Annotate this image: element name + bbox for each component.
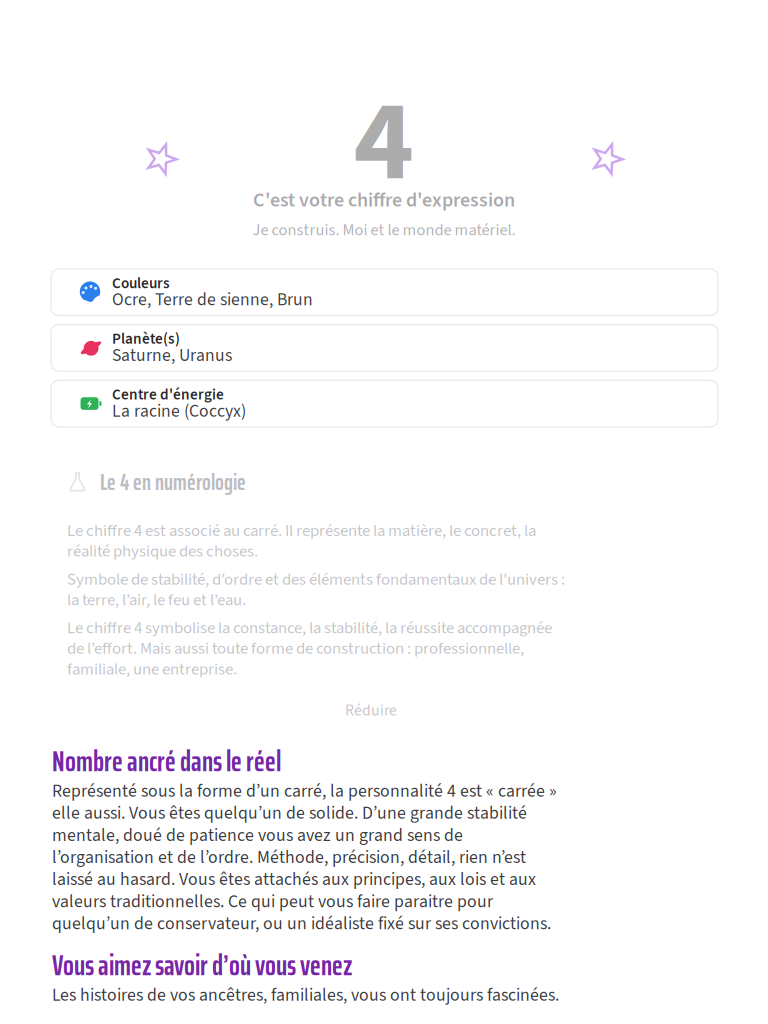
- staticText: Le chiffre 4 symbolise la constance, la …: [67, 618, 552, 679]
- staticText: Couleurs: [112, 276, 170, 291]
- staticText: Le 4 en numérologie: [100, 468, 246, 496]
- staticText: Ocre, Terre de sienne, Brun: [112, 291, 313, 308]
- staticText: C'est votre chiffre d'expression: [253, 186, 515, 214]
- button[interactable]: Centre d'énergie: [51, 380, 718, 427]
- staticText: Planète(s): [112, 331, 180, 347]
- staticText: Représenté sous la forme d’un carré, la …: [52, 780, 557, 935]
- staticText: Nombre ancré dans le réel: [52, 744, 281, 779]
- staticText: Vous aimez savoir d’où vous venez: [52, 948, 352, 983]
- staticText: Les histoires de vos ancêtres, familiale…: [52, 984, 559, 1006]
- button[interactable]: Réduire: [67, 694, 675, 727]
- staticText: Le chiffre 4 est associé au carré. Il re…: [67, 520, 536, 562]
- staticText: Saturne, Uranus: [112, 347, 232, 364]
- button[interactable]: Couleurs: [51, 269, 718, 315]
- staticText: Symbole de stabilité, d’ordre et des élé…: [67, 569, 565, 610]
- staticText: Centre d'énergie: [112, 387, 224, 402]
- staticText: Réduire: [345, 699, 397, 722]
- staticText: La racine (Coccyx): [112, 402, 246, 420]
- button[interactable]: Planète(s): [51, 324, 718, 371]
- staticText: Je construis. Moi et le monde matériel.: [252, 218, 515, 242]
- staticText: 4: [353, 60, 414, 224]
